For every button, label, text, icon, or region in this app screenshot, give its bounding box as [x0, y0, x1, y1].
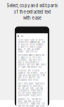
staticText: Select, copy and edit parts	[6, 3, 57, 8]
staticText: Quisquam est, qui dolorem ipsum quia dol…	[18, 98, 45, 107]
staticText: with ease	[23, 15, 41, 20]
staticText: Excepteur sint occaecat cupidatat non pr…	[18, 70, 46, 81]
staticText: Lorem ipsum dolor sit amet, consectetur …	[18, 39, 45, 53]
staticText: of the extracted text	[13, 9, 50, 14]
staticText: Exercitation ullamco laboris nisi ut ali…	[18, 54, 46, 68]
staticText: Nemo enim ipsam voluptatem quia voluptas…	[18, 83, 45, 97]
